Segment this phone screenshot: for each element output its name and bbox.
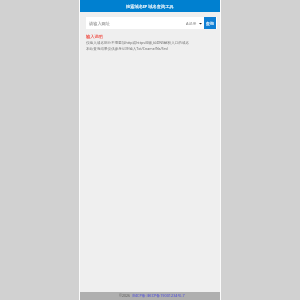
button[interactable]: 查询: [204, 17, 216, 29]
staticText: 本站查询结果仅供参考记录输入Txt/Cname/Ns/Srv): [86, 46, 169, 51]
staticText: 搜索域名IP 域名查询工具: [126, 3, 174, 9]
button[interactable]: 浙ICP备 浙ICP备19001234号-7: [132, 293, 185, 298]
staticText: 查询: [206, 21, 214, 26]
button[interactable]: A记录: [186, 17, 204, 29]
staticText: 请输入网址: [89, 21, 110, 26]
button[interactable]: 请输入网址: [86, 17, 186, 29]
staticText: 仅输入域名部分不需要加http或https前缀,如DNS解析入口的域名: [86, 40, 190, 45]
staticText: A记录: [186, 21, 197, 26]
staticText: ©2026: [119, 293, 130, 298]
staticText: 输入说明: [86, 34, 103, 39]
